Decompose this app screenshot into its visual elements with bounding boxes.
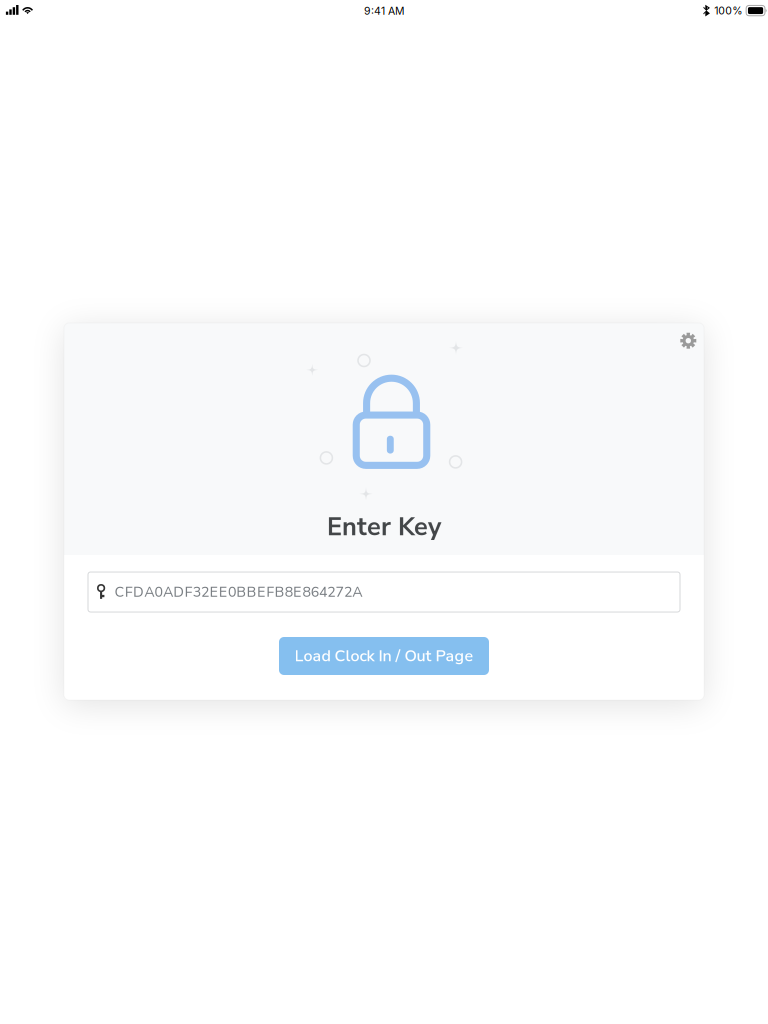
button[interactable]: Settings	[669, 322, 707, 360]
staticText: 9:41 AM	[364, 5, 405, 17]
staticText: 100%	[714, 4, 742, 17]
button[interactable]: Load Clock In / Out Page	[279, 637, 489, 675]
button[interactable]: CFDA0ADF32EE0BBEFB8E864272A	[88, 572, 680, 612]
staticText: Load Clock In / Out Page	[294, 645, 473, 667]
staticText: Enter Key	[327, 510, 441, 544]
staticText: CFDA0ADF32EE0BBEFB8E864272A	[114, 582, 362, 602]
